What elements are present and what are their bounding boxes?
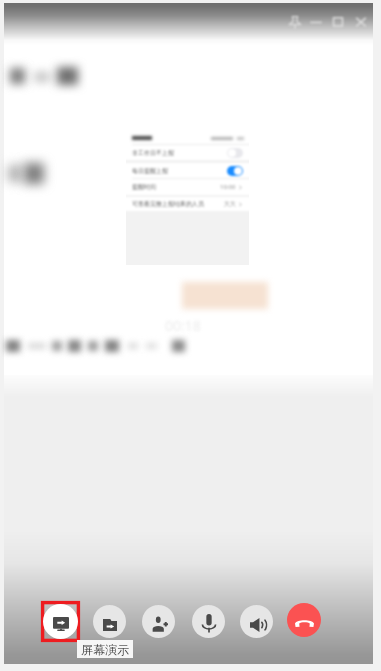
button[interactable]: Window control (330, 14, 346, 30)
staticText: 提醒时间 (132, 183, 156, 191)
button[interactable]: Speaker (240, 605, 273, 638)
button[interactable]: 每日提醒上报 (126, 163, 249, 178)
button[interactable]: Add participant (142, 605, 175, 638)
staticText: 屏幕演示 (81, 642, 129, 657)
button[interactable]: Hang up (287, 603, 321, 637)
button[interactable]: Window control (353, 14, 369, 30)
button[interactable]: 提醒时间 (126, 179, 249, 195)
staticText: 大大 (224, 200, 236, 208)
button[interactable]: Window control (287, 14, 303, 30)
button[interactable] (227, 166, 243, 176)
staticText: 可查看完整上报结果的人员 (132, 200, 204, 208)
button[interactable]: Share screen (43, 604, 78, 639)
button[interactable]: 可查看完整上报结果的人员 (126, 197, 249, 211)
button[interactable]: Mute microphone (192, 605, 225, 638)
button[interactable] (227, 148, 243, 158)
staticText: 非工作日不上报 (132, 149, 174, 157)
button[interactable]: Share file (93, 605, 126, 638)
button[interactable]: 非工作日不上报 (126, 145, 249, 160)
staticText: 10:00 (220, 183, 236, 191)
button[interactable]: Window control (308, 14, 324, 30)
staticText: 每日提醒上报 (132, 167, 168, 175)
